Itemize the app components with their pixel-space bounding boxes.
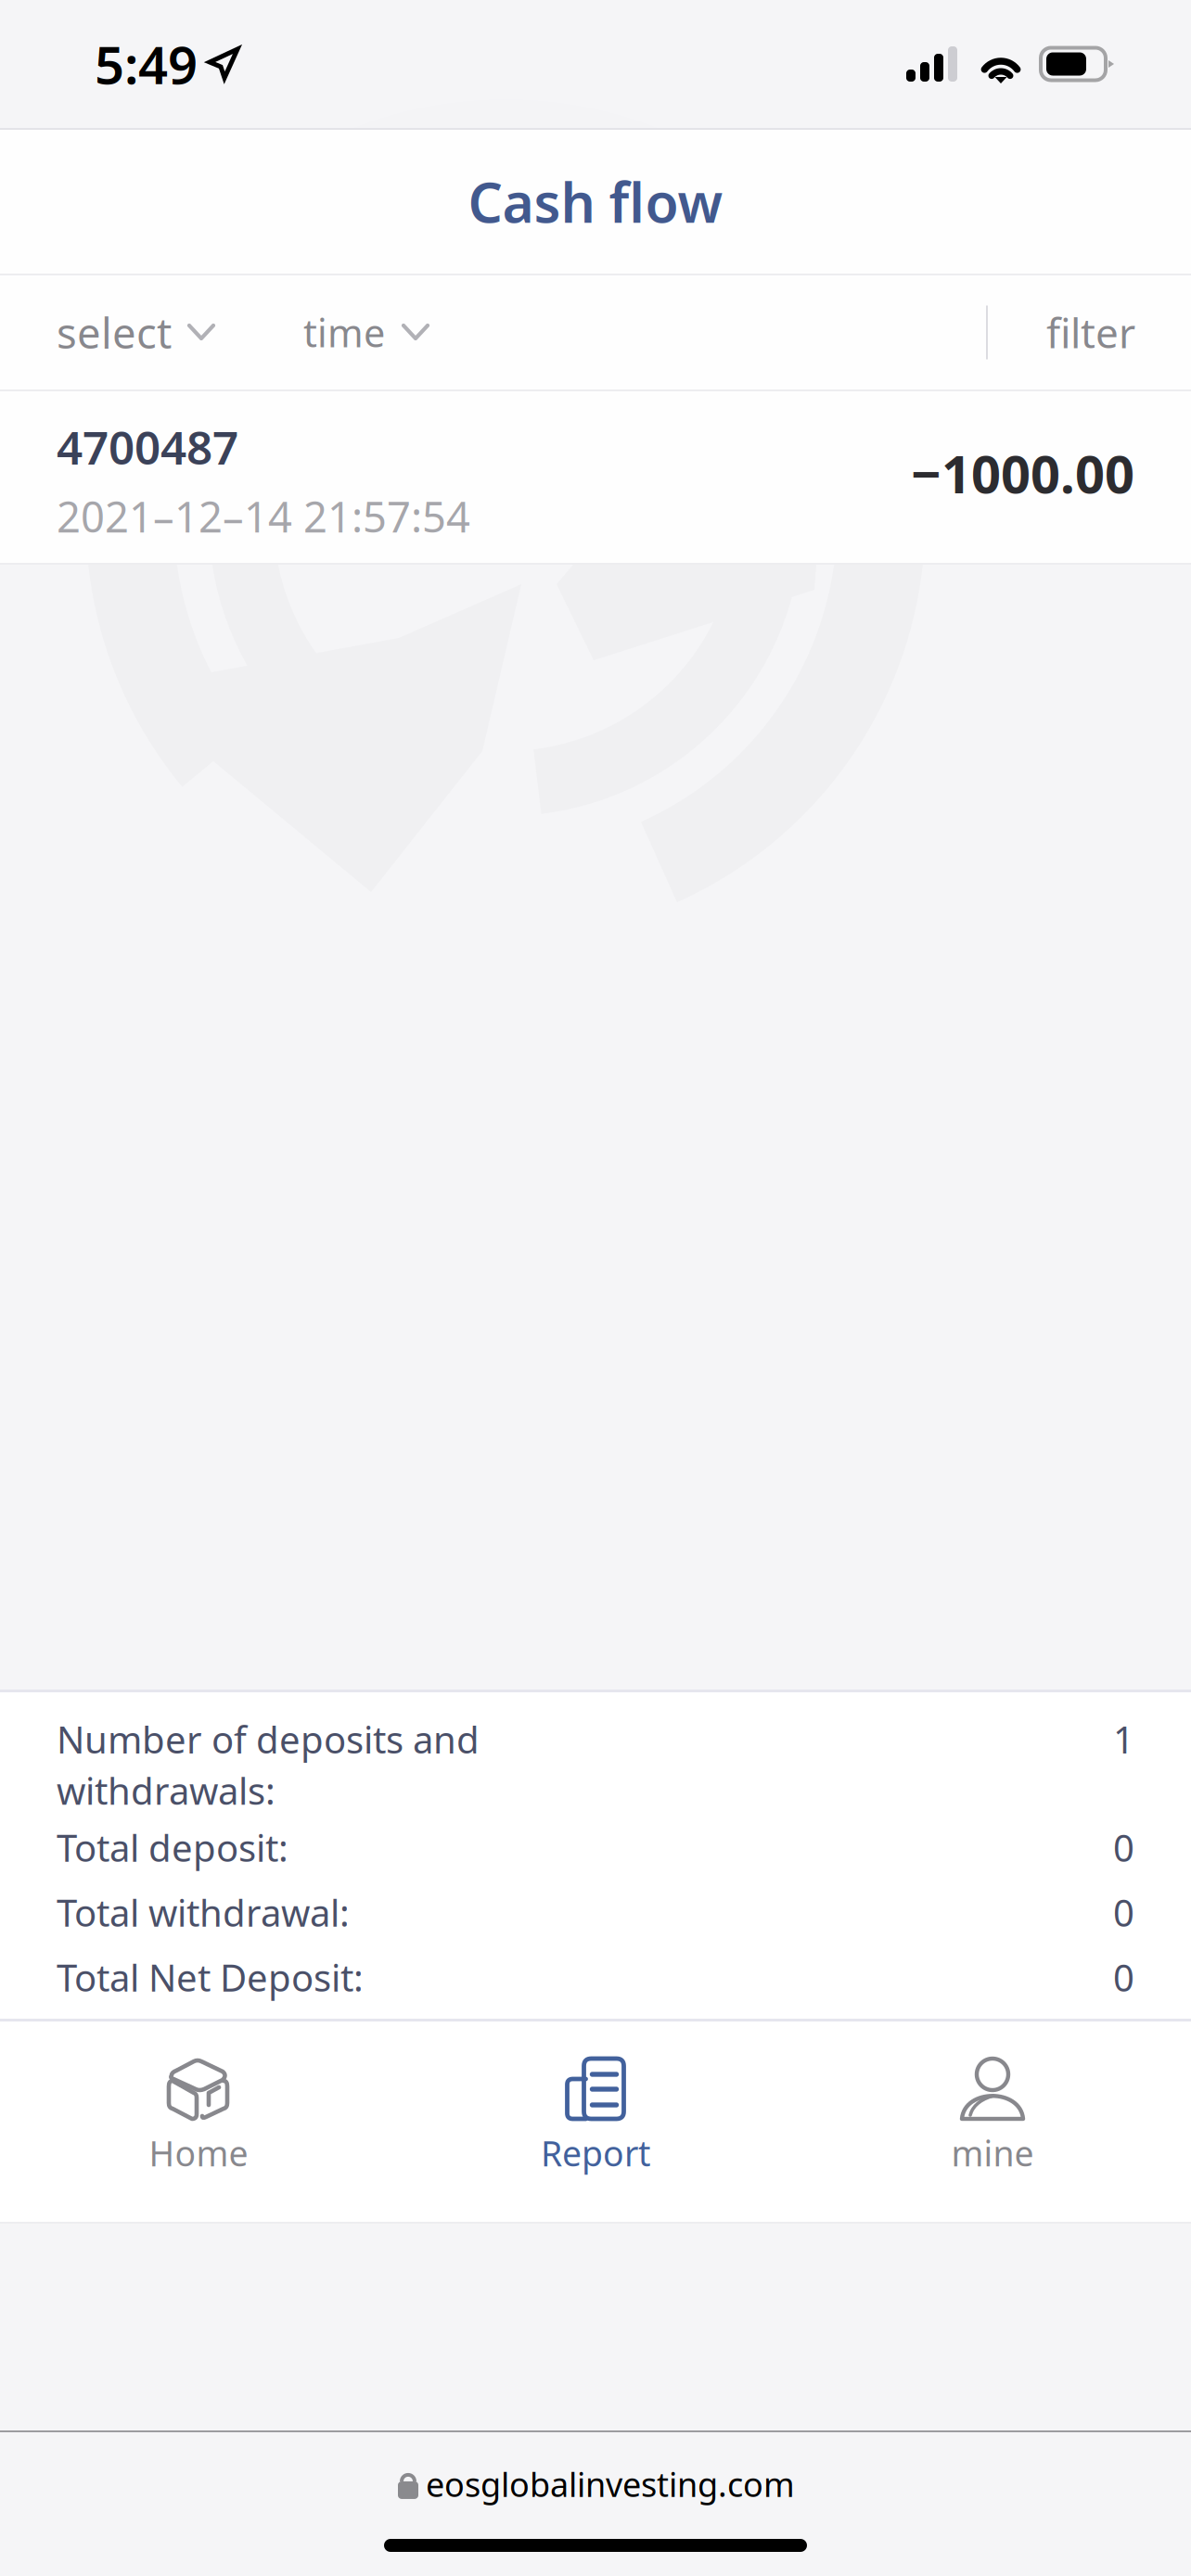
staticText: 2021–12–14 21:57:54 (57, 488, 470, 544)
staticText: mine (951, 2130, 1034, 2176)
button[interactable]: mine (794, 2021, 1191, 2222)
staticText: Home (149, 2130, 248, 2176)
staticText: Total deposit: (57, 1823, 288, 1872)
staticText: 1 (1113, 1715, 1134, 1764)
staticText: −1000.00 (911, 439, 1134, 508)
button[interactable]: select (57, 279, 215, 386)
staticText: Total withdrawal: (57, 1888, 350, 1937)
staticText: withdrawals: (57, 1766, 275, 1815)
button[interactable]: Report (397, 2021, 794, 2222)
staticText: Cash flow (468, 166, 723, 238)
staticText: 5:49 (95, 29, 198, 98)
button[interactable]: 4700487 (0, 391, 1191, 563)
staticText: 0 (1113, 1823, 1134, 1872)
button[interactable]: Home (0, 2021, 397, 2222)
staticText: 4700487 (57, 416, 238, 477)
button[interactable]: filter (988, 275, 1191, 389)
staticText: filter (1046, 305, 1135, 360)
button[interactable]: time (303, 281, 429, 384)
staticText: Number of deposits and (57, 1715, 480, 1764)
staticText: eosglobalinvesting.com (426, 2462, 795, 2506)
staticText: 0 (1113, 1888, 1134, 1937)
staticText: Report (541, 2130, 650, 2176)
staticText: Total Net Deposit: (57, 1953, 364, 2002)
staticText: time (303, 307, 385, 358)
staticText: 0 (1113, 1953, 1134, 2002)
staticText: select (57, 305, 172, 360)
